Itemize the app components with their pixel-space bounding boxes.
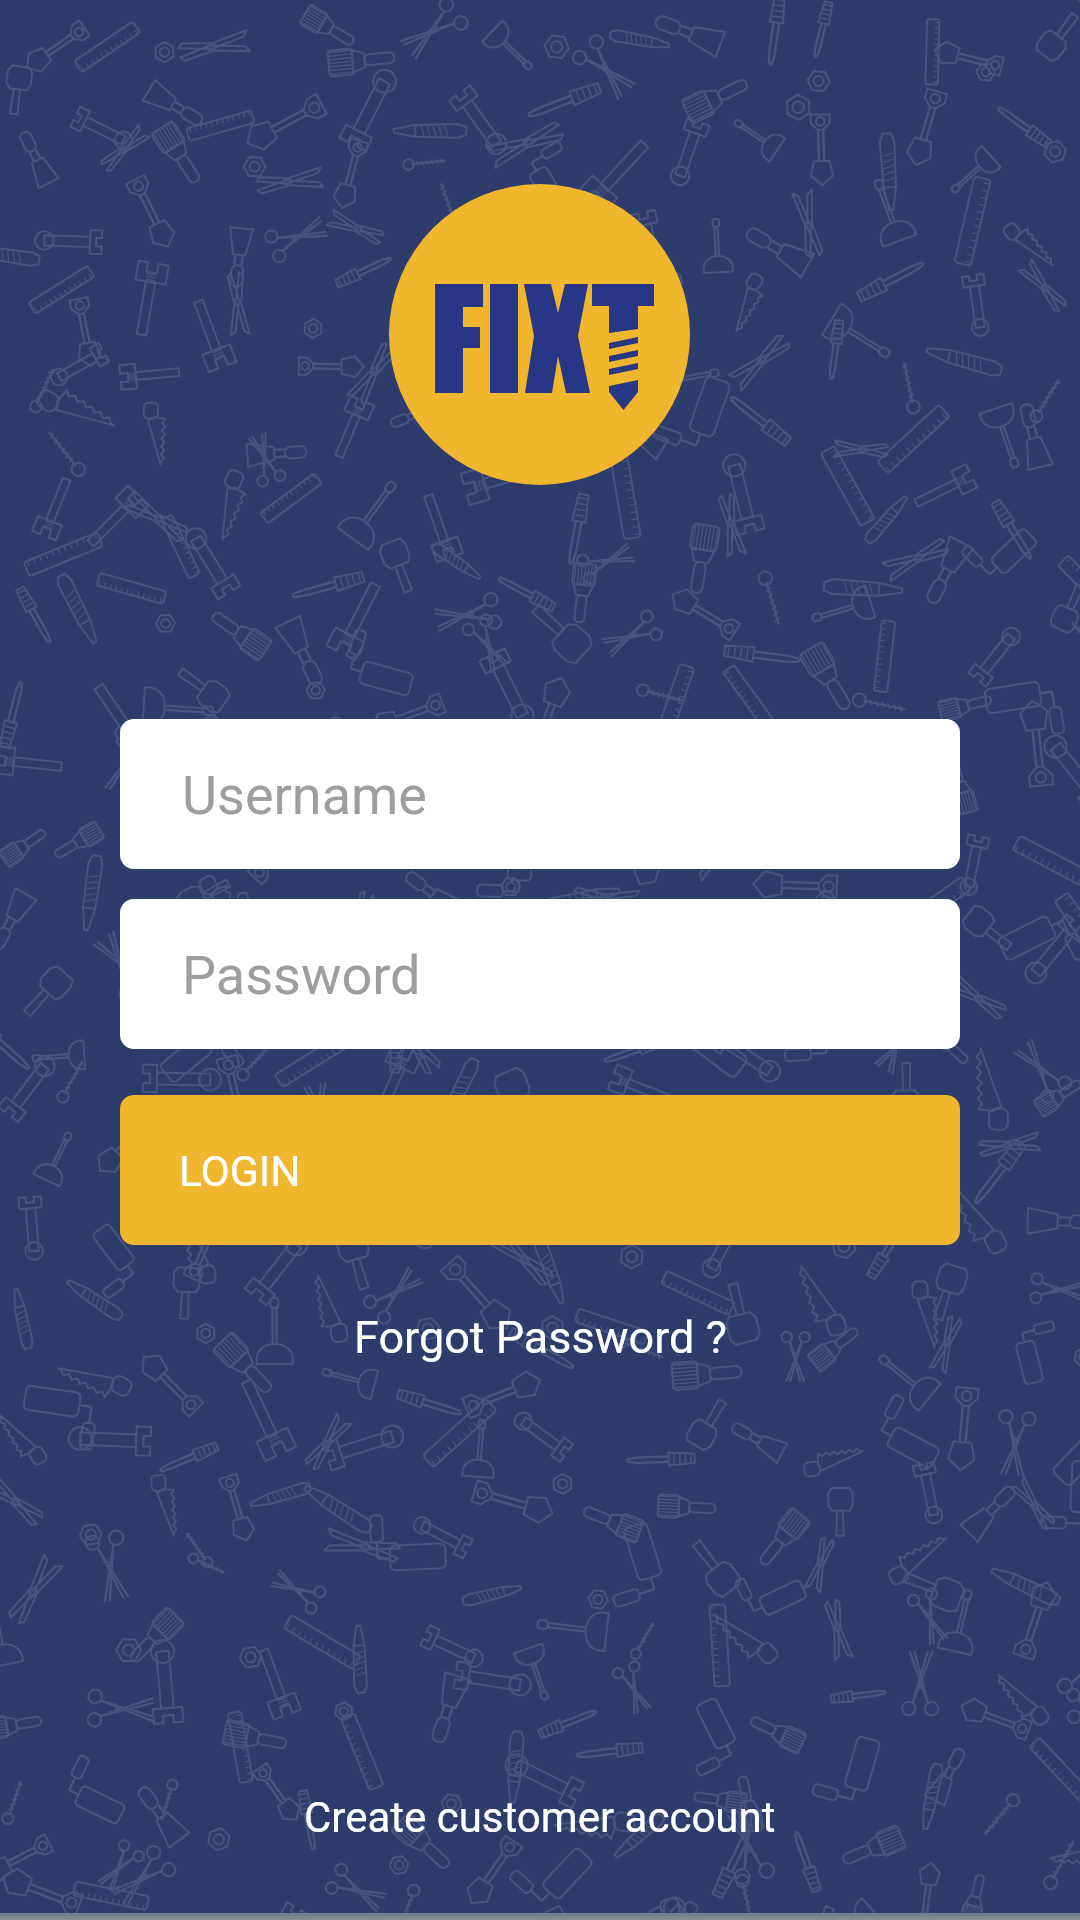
button[interactable]: Forgot Password ? <box>324 1291 757 1384</box>
staticText: LOGIN <box>179 1147 301 1197</box>
staticText: Forgot Password ? <box>354 1311 727 1364</box>
staticText: Username <box>182 764 428 827</box>
staticText: Password <box>182 944 421 1007</box>
button[interactable]: Create customer account <box>274 1771 806 1864</box>
button[interactable]: Password <box>120 899 960 1049</box>
button[interactable]: Username <box>120 719 960 869</box>
staticText: Create customer account <box>304 1793 776 1842</box>
button[interactable]: LOGIN <box>120 1095 960 1245</box>
other: FIXT logo <box>389 184 690 485</box>
